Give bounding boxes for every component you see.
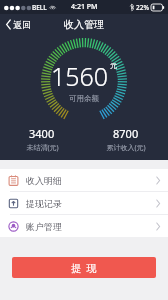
button[interactable]: 返回 [0, 14, 39, 34]
staticText: 收入明细 [26, 175, 62, 186]
staticText: 提 现 [71, 261, 97, 275]
staticText: 4:21 PM [71, 2, 98, 12]
button[interactable]: 提 现 [12, 257, 156, 278]
staticText: 累计收入(元) [106, 143, 146, 153]
staticText: 元 [110, 61, 117, 70]
staticText: 22% [136, 3, 149, 12]
staticText: 提现记录 [26, 198, 62, 209]
staticText: 8700 [113, 126, 139, 141]
staticText: 账户管理 [26, 221, 62, 232]
button[interactable]: 提现记录 [0, 192, 168, 214]
button[interactable]: 账户管理 [0, 215, 168, 237]
staticText: 1560 [51, 59, 109, 93]
staticText: 3400 [29, 126, 55, 141]
staticText: BELL [32, 3, 47, 12]
staticText: 收入管理 [64, 18, 104, 31]
button[interactable]: 收入明细 [0, 169, 168, 191]
staticText: 返回 [13, 19, 31, 30]
staticText: 可用余额 [69, 94, 99, 103]
staticText: 未结清(元) [26, 143, 59, 153]
